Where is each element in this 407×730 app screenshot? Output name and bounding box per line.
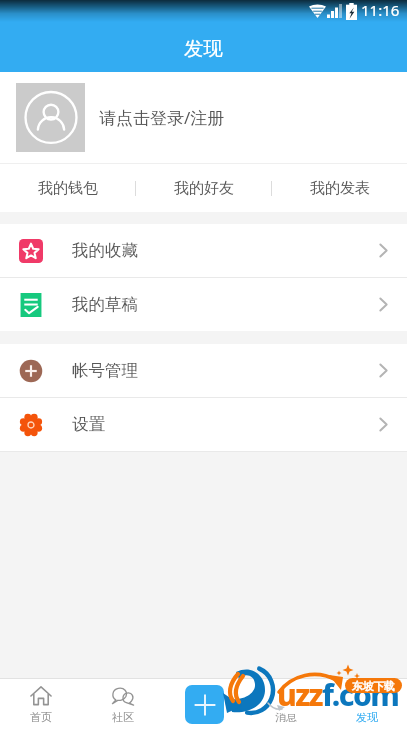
staticText: 发现: [184, 36, 223, 61]
button[interactable]: 我的发表: [272, 164, 407, 212]
button[interactable]: 我的好友: [136, 164, 271, 212]
staticText: 请点击登录/注册: [99, 106, 225, 129]
button[interactable]: 设置: [0, 398, 407, 451]
staticText: 设置: [72, 414, 105, 435]
staticText: 我的好友: [174, 179, 234, 198]
button[interactable]: 新建: [164, 678, 245, 730]
button[interactable]: 我的草稿: [0, 278, 407, 331]
staticText: f.com: [322, 674, 399, 715]
staticText: 我的草稿: [72, 294, 138, 315]
staticText: 我的钱包: [38, 179, 98, 198]
staticText: 社区: [112, 710, 134, 724]
staticText: 帐号管理: [72, 360, 138, 381]
button[interactable]: 首页: [0, 678, 82, 730]
staticText: 发现: [356, 710, 378, 724]
staticText: 消息: [275, 710, 297, 724]
staticText: 11:16: [361, 0, 400, 20]
staticText: uzz: [277, 674, 322, 715]
button[interactable]: 社区: [82, 678, 164, 730]
staticText: 我的收藏: [72, 240, 138, 261]
button[interactable]: 我的钱包: [0, 164, 135, 212]
staticText: 首页: [30, 710, 52, 724]
button[interactable]: 请点击登录/注册: [0, 72, 407, 163]
button[interactable]: 发现: [326, 678, 407, 730]
button[interactable]: 消息: [245, 678, 326, 730]
button[interactable]: 我的收藏: [0, 224, 407, 277]
staticText: 我的发表: [310, 179, 370, 198]
button[interactable]: 帐号管理: [0, 344, 407, 397]
staticText: 东坡下载: [352, 679, 395, 693]
